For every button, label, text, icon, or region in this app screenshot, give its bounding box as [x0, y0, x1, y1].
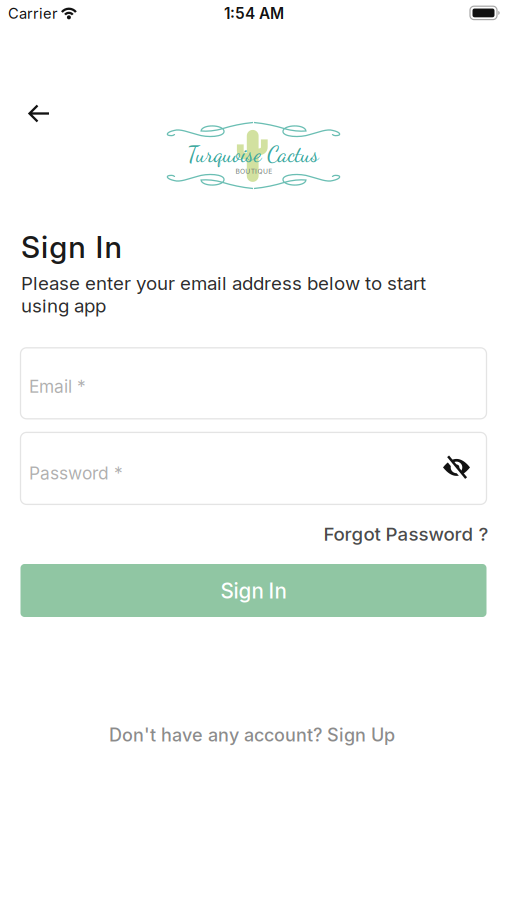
- button[interactable]: Back: [16, 93, 60, 133]
- button[interactable]: Don't have any account? Sign Up: [109, 724, 395, 746]
- staticText: Email *: [29, 376, 86, 397]
- staticText: Don't have any account? Sign Up: [109, 724, 395, 746]
- staticText: Turquoise Cactus: [187, 141, 319, 167]
- staticText: Carrier: [8, 4, 58, 22]
- staticText: Password *: [29, 463, 123, 484]
- staticText: Forgot Password ?: [323, 523, 488, 545]
- button[interactable]: Show password: [442, 455, 470, 480]
- staticText: Sign In: [220, 578, 286, 603]
- button[interactable]: Sign In: [20, 564, 486, 617]
- staticText: Please enter your email address below to…: [21, 272, 426, 317]
- staticText: 1:54 AM: [224, 4, 284, 23]
- staticText: Sign In: [21, 229, 122, 265]
- button[interactable]: Forgot Password ?: [323, 523, 488, 545]
- staticText: BOUTIQUE: [235, 167, 272, 175]
